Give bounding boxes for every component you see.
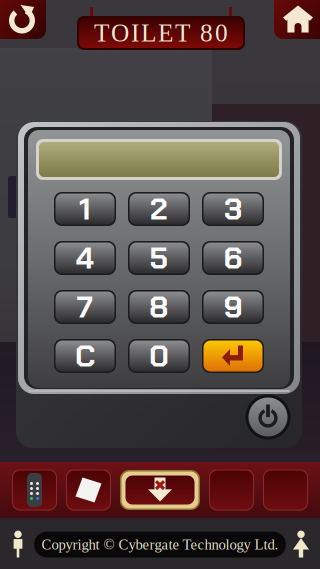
button[interactable]: Inventory slot 5 bbox=[263, 468, 308, 512]
button[interactable]: C bbox=[54, 339, 116, 373]
button[interactable]: 4 bbox=[54, 241, 116, 275]
staticText: TOILET 80 bbox=[94, 19, 228, 47]
staticText: 5 bbox=[149, 238, 168, 278]
button[interactable]: Enter bbox=[202, 339, 264, 373]
staticText: 3 bbox=[224, 189, 242, 229]
button[interactable]: Inventory slot 3 bbox=[120, 468, 200, 512]
staticText: 0 bbox=[149, 336, 169, 376]
button[interactable]: 9 bbox=[202, 290, 264, 324]
button[interactable]: 8 bbox=[128, 290, 190, 324]
button[interactable]: 3 bbox=[202, 192, 264, 226]
staticText: 8 bbox=[149, 287, 169, 327]
button[interactable]: 2 bbox=[128, 192, 190, 226]
staticText: 1 bbox=[79, 189, 91, 229]
button[interactable]: 6 bbox=[202, 241, 264, 275]
staticText: 6 bbox=[223, 238, 242, 278]
button[interactable]: Home bbox=[270, 0, 320, 43]
button[interactable]: Inventory slot 1 bbox=[12, 468, 57, 512]
button[interactable]: 5 bbox=[128, 241, 190, 275]
staticText: 7 bbox=[77, 287, 93, 327]
button[interactable]: Inventory slot 2 bbox=[66, 468, 111, 512]
staticText: Copyright © Cybergate Technology Ltd. bbox=[41, 536, 278, 553]
staticText: 9 bbox=[223, 287, 242, 327]
button[interactable]: Restart bbox=[0, 0, 50, 43]
staticText: 4 bbox=[76, 238, 94, 278]
button[interactable]: Power bbox=[245, 394, 291, 440]
button[interactable]: 7 bbox=[54, 290, 116, 324]
staticText: C bbox=[75, 336, 95, 376]
button[interactable]: 1 bbox=[54, 192, 116, 226]
button[interactable]: 0 bbox=[128, 339, 190, 373]
staticText: 2 bbox=[150, 189, 168, 229]
button[interactable]: Inventory slot 4 bbox=[209, 468, 254, 512]
